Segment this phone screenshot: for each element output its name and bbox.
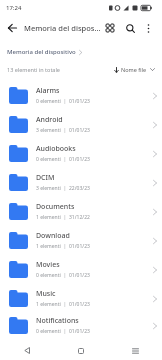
staticText: |	[61, 272, 69, 279]
staticText: 01/01/23	[69, 127, 90, 134]
staticText: Download	[36, 231, 70, 241]
staticText: |	[61, 243, 69, 250]
button[interactable]: Notifications	[0, 313, 162, 338]
staticText: Memoria del dispositivo	[7, 48, 76, 56]
staticText: Audiobooks	[36, 144, 76, 154]
staticText: 22/03/23	[69, 185, 90, 192]
staticText: Movies	[36, 260, 60, 270]
button[interactable]: Alarms	[0, 81, 162, 110]
staticText: Documents	[36, 202, 75, 212]
button[interactable]: Memoria del dispositivo	[7, 48, 82, 56]
staticText: 0 elementi	[36, 98, 61, 105]
staticText: 1 elementi	[36, 214, 61, 221]
staticText: |	[61, 214, 69, 221]
staticText: 0 elementi	[36, 272, 61, 279]
button[interactable]: DCIM	[0, 168, 162, 197]
staticText: |	[61, 301, 69, 308]
button[interactable]	[8, 20, 24, 36]
staticText: 3 elementi	[36, 185, 61, 192]
button[interactable]: Documents	[0, 197, 162, 226]
staticText: 1 elementi	[36, 243, 61, 250]
staticText: 01/01/23	[69, 156, 90, 163]
button[interactable]: Nome file	[114, 66, 155, 73]
staticText: 1 elementi	[36, 301, 61, 308]
button[interactable]	[54, 341, 108, 360]
staticText: Memoria del disposit…	[24, 23, 102, 33]
button[interactable]	[108, 341, 162, 360]
staticText: 13 elementi in totale	[7, 66, 60, 73]
button[interactable]	[102, 20, 118, 36]
staticText: 3 elementi	[36, 127, 61, 134]
button[interactable]	[142, 22, 154, 34]
staticText: |	[61, 185, 69, 192]
staticText: 01/01/23	[69, 328, 90, 335]
staticText: 01/01/23	[69, 272, 90, 279]
staticText: 01/01/23	[69, 98, 90, 105]
staticText: Music	[36, 289, 56, 299]
staticText: |	[61, 98, 69, 105]
button[interactable]: Music	[0, 284, 162, 313]
staticText: 0 elementi	[36, 328, 61, 335]
button[interactable]: Audiobooks	[0, 139, 162, 168]
staticText: Android	[36, 115, 63, 125]
button[interactable]	[122, 20, 138, 36]
staticText: |	[61, 156, 69, 163]
staticText: 01/01/23	[69, 243, 90, 250]
staticText: Alarms	[36, 86, 60, 96]
staticText: DCIM	[36, 173, 55, 183]
button[interactable]: Download	[0, 226, 162, 255]
staticText: 01/01/23	[69, 301, 90, 308]
staticText: 31/12/22	[69, 214, 90, 221]
button[interactable]	[0, 341, 54, 360]
staticText: |	[61, 127, 69, 134]
staticText: Nome file	[121, 66, 147, 73]
button[interactable]: Movies	[0, 255, 162, 284]
button[interactable]: Android	[0, 110, 162, 139]
staticText: Notifications	[36, 316, 79, 326]
staticText: 0 elementi	[36, 156, 61, 163]
staticText: 17:24	[6, 4, 22, 12]
staticText: |	[61, 328, 69, 335]
